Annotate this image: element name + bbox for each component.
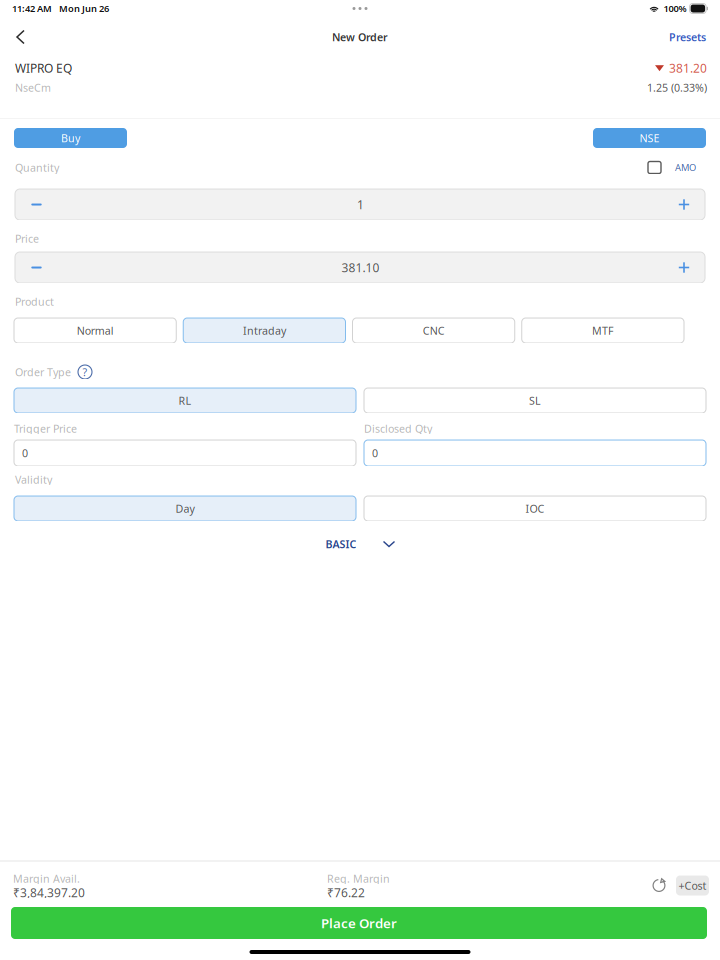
- staticText: SL: [529, 393, 541, 408]
- staticText: WIPRO EQ: [15, 60, 72, 76]
- button[interactable]: Intraday: [183, 318, 345, 343]
- staticText: NSE: [639, 131, 659, 145]
- staticText: Mon Jun 26: [59, 2, 109, 15]
- staticText: MTF: [592, 323, 614, 338]
- staticText: Trigger Price: [14, 421, 77, 436]
- button[interactable]: Increase: [663, 252, 705, 283]
- staticText: Disclosed Qty: [364, 421, 432, 436]
- staticText: 381.20: [669, 60, 707, 76]
- button[interactable]: Decrease: [15, 252, 58, 283]
- staticText: 100%: [664, 2, 687, 15]
- staticText: Intraday: [243, 323, 286, 338]
- button[interactable]: Refresh: [646, 874, 672, 896]
- staticText: IOC: [525, 501, 544, 516]
- button[interactable]: MTF: [522, 318, 684, 343]
- button[interactable]: Place Order: [11, 907, 707, 939]
- staticText: Validity: [15, 472, 52, 487]
- staticText: BASIC: [325, 537, 356, 551]
- staticText: Normal: [77, 323, 114, 338]
- staticText: 1: [357, 196, 364, 213]
- staticText: +Cost: [678, 878, 706, 893]
- staticText: RL: [178, 393, 191, 408]
- staticText: 1.25 (0.33%): [647, 80, 707, 95]
- staticText: Buy: [61, 131, 80, 145]
- button[interactable]: Presets: [660, 22, 715, 52]
- button[interactable]: NSE: [593, 128, 706, 148]
- button[interactable]: SL: [364, 388, 706, 413]
- staticText: Order Type: [15, 365, 71, 379]
- staticText: Place Order: [321, 914, 397, 932]
- staticText: Product: [15, 294, 54, 309]
- button[interactable]: CNC: [352, 318, 515, 343]
- staticText: Quantity: [15, 160, 59, 175]
- staticText: 0: [372, 446, 378, 460]
- button[interactable]: IOC: [364, 496, 706, 521]
- button[interactable]: AMO: [648, 161, 696, 174]
- button[interactable]: Back: [8, 22, 33, 51]
- button[interactable]: Normal: [14, 318, 176, 343]
- staticText: ₹3,84,397.20: [13, 884, 85, 901]
- staticText: NseCm: [15, 80, 51, 95]
- staticText: 0: [22, 446, 28, 460]
- button[interactable]: Buy: [14, 128, 127, 148]
- staticText: 381.10: [341, 259, 379, 276]
- button[interactable]: Increase: [663, 189, 705, 220]
- button[interactable]: +Cost: [676, 875, 709, 895]
- staticText: ?: [82, 365, 87, 379]
- staticText: Day: [175, 501, 194, 516]
- staticText: Price: [15, 231, 39, 246]
- staticText: New Order: [332, 30, 388, 44]
- staticText: Req. Margin: [327, 871, 390, 886]
- staticText: ₹76.22: [327, 884, 365, 901]
- staticText: Presets: [669, 30, 706, 44]
- button[interactable]: BASIC: [325, 536, 394, 552]
- staticText: CNC: [423, 323, 445, 338]
- staticText: AMO: [675, 161, 696, 174]
- button[interactable]: Day: [14, 496, 356, 521]
- button[interactable]: Decrease: [15, 189, 58, 220]
- staticText: 11:42 AM: [12, 2, 52, 15]
- button[interactable]: RL: [14, 388, 356, 413]
- staticText: Margin Avail.: [13, 871, 80, 886]
